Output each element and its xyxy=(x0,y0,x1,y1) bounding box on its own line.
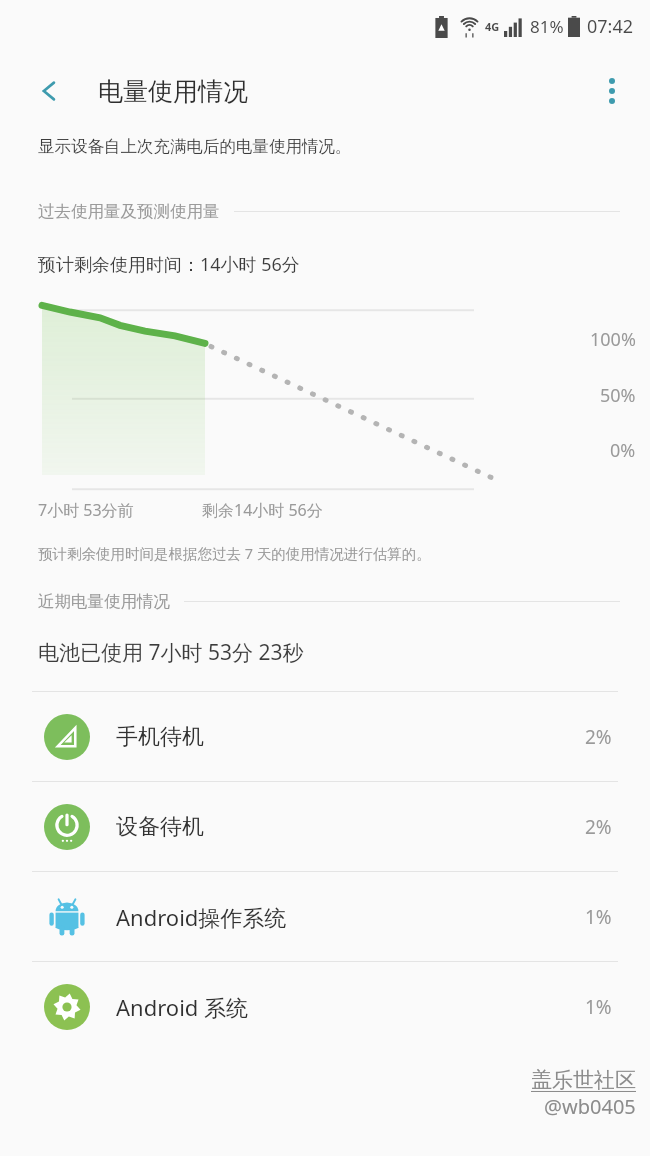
button[interactable]: 设备待机 xyxy=(0,782,650,871)
staticText: Android 系统 xyxy=(116,992,585,1022)
staticText: 1% xyxy=(585,994,612,1020)
staticText: 预计剩余使用时间是根据您过去 7 天的使用情况进行估算的。 xyxy=(38,543,431,563)
staticText: Android操作系统 xyxy=(116,902,585,932)
staticText: 100% xyxy=(590,327,636,352)
staticText: 显示设备自上次充满电后的电量使用情况。 xyxy=(38,136,352,157)
staticText: 电量使用情况 xyxy=(98,76,248,107)
button[interactable]: More options xyxy=(588,67,636,115)
staticText: 预计剩余使用时间：14小时 56分 xyxy=(38,252,300,277)
staticText: 近期电量使用情况 xyxy=(38,591,170,612)
staticText: 2% xyxy=(585,724,612,750)
staticText: 7小时 53分前 xyxy=(38,499,134,521)
staticText: 电池已使用 7小时 53分 23秒 xyxy=(38,638,304,667)
staticText: 50% xyxy=(600,383,636,408)
staticText: 4G xyxy=(485,19,500,34)
staticText: 盖乐世社区 xyxy=(531,1067,636,1093)
staticText: 07:42 xyxy=(587,14,634,39)
button[interactable]: Android操作系统 xyxy=(0,872,650,961)
staticText: 手机待机 xyxy=(116,723,585,751)
staticText: 1% xyxy=(585,904,612,930)
staticText: 2% xyxy=(585,814,612,840)
staticText: 0% xyxy=(610,438,636,463)
button[interactable]: Back xyxy=(28,69,72,113)
staticText: 设备待机 xyxy=(116,813,585,841)
button[interactable]: 手机待机 xyxy=(0,692,650,781)
staticText: 剩余14小时 56分 xyxy=(202,499,323,521)
button[interactable]: Android 系统 xyxy=(0,962,650,1051)
staticText: 过去使用量及预测使用量 xyxy=(38,201,220,222)
staticText: 81% xyxy=(530,15,564,38)
staticText: @wb0405 xyxy=(544,1093,636,1120)
